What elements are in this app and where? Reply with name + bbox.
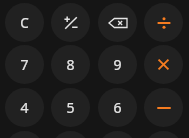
button[interactable]: 8 xyxy=(51,45,90,84)
button[interactable]: C xyxy=(5,3,44,42)
staticText: 4 xyxy=(20,98,29,117)
button[interactable]: 7 xyxy=(5,45,44,84)
button[interactable]: Multiply xyxy=(144,45,183,84)
button[interactable]: Add xyxy=(144,131,183,138)
button[interactable]: Backspace xyxy=(98,3,137,42)
button[interactable]: 9 xyxy=(98,45,137,84)
button[interactable]: Subtract xyxy=(144,88,183,127)
button[interactable]: Divide xyxy=(144,3,183,42)
button[interactable]: 5 xyxy=(51,88,90,127)
staticText: 8 xyxy=(66,55,75,74)
button[interactable]: 3 xyxy=(98,131,137,138)
button[interactable]: 2 xyxy=(51,131,90,138)
button[interactable]: 6 xyxy=(98,88,137,127)
button[interactable]: 1 xyxy=(5,131,44,138)
staticText: C xyxy=(20,14,29,32)
staticText: 9 xyxy=(113,55,122,74)
staticText: 5 xyxy=(66,98,75,117)
button[interactable]: 4 xyxy=(5,88,44,127)
button[interactable]: Plus minus xyxy=(51,3,90,42)
staticText: 7 xyxy=(20,55,29,74)
staticText: 6 xyxy=(113,98,122,117)
